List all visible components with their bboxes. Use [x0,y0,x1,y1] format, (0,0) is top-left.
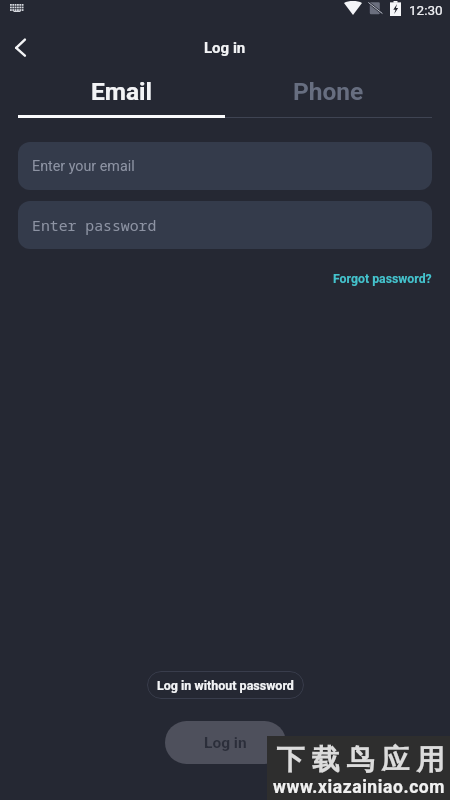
staticText: Forgot password? [333,272,432,286]
staticText: Log in [204,39,246,57]
button[interactable]: Forgot password? [333,272,432,286]
staticText: Phone [293,77,364,106]
button[interactable]: Enter your email [18,142,432,190]
staticText: www.xiazainiao.com [273,777,446,798]
staticText: Log in [204,734,247,752]
staticText: 12:30 [409,2,443,18]
button[interactable]: Log in [165,721,286,764]
button[interactable]: Log in without password [147,671,304,699]
staticText: Log in without password [157,678,294,693]
staticText: Enter your email [32,158,135,175]
button[interactable]: Back [3,30,39,66]
staticText: 下载鸟应用 [273,742,448,777]
staticText: Email [91,77,153,106]
button[interactable]: Email [18,68,225,115]
button[interactable]: Phone [225,68,432,115]
staticText: Enter password [32,215,157,235]
button[interactable]: Enter password [18,201,432,249]
